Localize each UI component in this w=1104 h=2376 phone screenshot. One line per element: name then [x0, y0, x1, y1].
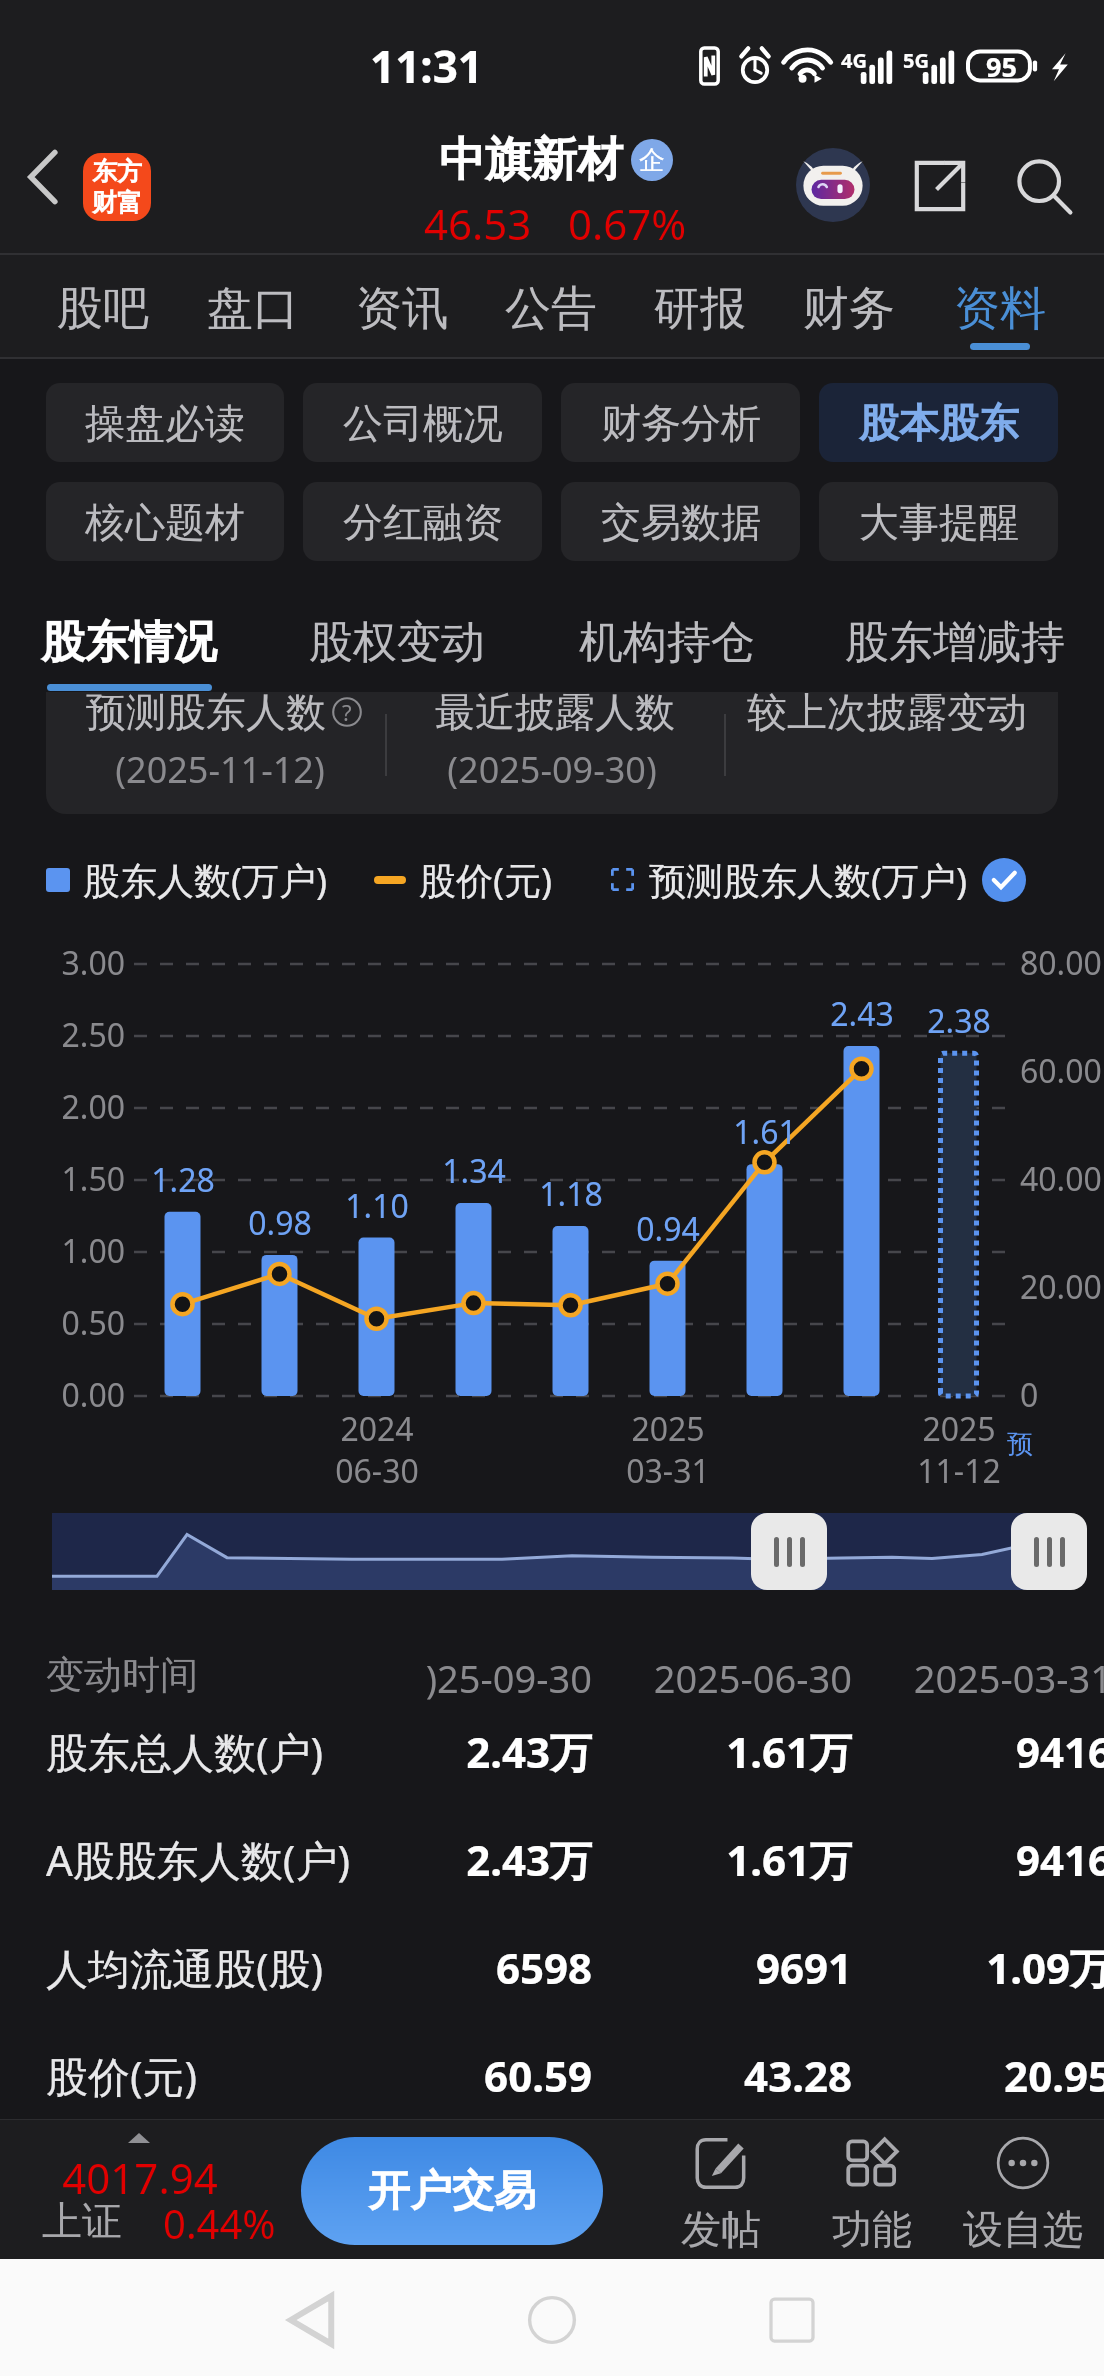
- button[interactable]: 股东情况: [19, 580, 239, 694]
- staticText: 0.94: [618, 1207, 718, 1251]
- staticText: 2025: [879, 1407, 1039, 1451]
- button[interactable]: 资料: [938, 255, 1062, 358]
- button[interactable]: 股权变动: [287, 580, 507, 694]
- button[interactable]: Range handle: [751, 1513, 827, 1590]
- button[interactable]: 开户交易: [301, 2137, 603, 2245]
- button[interactable]: East Money home: [83, 153, 151, 221]
- button[interactable]: 财务: [787, 255, 911, 358]
- staticText: 06-30: [297, 1449, 457, 1493]
- button[interactable]: Recent apps: [747, 2275, 837, 2365]
- staticText: 60.00: [1020, 1049, 1104, 1093]
- staticText: 中旗新材: [439, 131, 623, 189]
- button[interactable]: 设自选: [953, 2124, 1093, 2259]
- staticText: 1.09万: [890, 1939, 1104, 1996]
- button[interactable]: 发帖: [651, 2124, 791, 2259]
- staticText: 交易数据: [601, 497, 761, 547]
- button[interactable]: 股吧: [41, 255, 165, 358]
- staticText: 2.43万: [370, 1723, 592, 1780]
- button[interactable]: 研报: [638, 255, 762, 358]
- staticText: 1.50: [33, 1157, 125, 1201]
- staticText: 人均流通股(股): [46, 1939, 324, 1996]
- staticText: 公司概况: [343, 398, 503, 448]
- button[interactable]: 资讯: [340, 255, 464, 358]
- button[interactable]: Toggle forecast series: [982, 858, 1026, 902]
- staticText: 核心题材: [85, 497, 245, 547]
- staticText: 股东人数(万户): [83, 854, 328, 905]
- button[interactable]: 分红融资: [303, 482, 542, 561]
- staticText: 设自选: [953, 2204, 1093, 2254]
- staticText: 股吧: [57, 280, 149, 338]
- staticText: 变动时间: [46, 1651, 198, 1699]
- staticText: 分红融资: [343, 497, 503, 547]
- staticText: 功能: [802, 2204, 942, 2254]
- staticText: (2025-11-12): [106, 745, 334, 794]
- staticText: 股东增减持: [845, 615, 1065, 670]
- button[interactable]: 功能: [802, 2124, 942, 2259]
- button[interactable]: 财务分析: [561, 383, 800, 462]
- staticText: 预测股东人数(万户): [649, 854, 968, 905]
- button[interactable]: AI assistant: [796, 148, 870, 222]
- staticText: 4G: [841, 47, 867, 74]
- button[interactable]: Share: [902, 148, 978, 224]
- staticText: 开户交易: [368, 2165, 536, 2218]
- staticText: 2.38: [909, 999, 1009, 1043]
- staticText: 40.00: [1020, 1157, 1104, 1201]
- staticText: 2025-03-31: [890, 1652, 1104, 1704]
- staticText: 6598: [370, 1939, 592, 1996]
- staticText: 股东情况: [41, 615, 217, 670]
- staticText: 1.10: [327, 1184, 427, 1228]
- staticText: 0.98: [230, 1201, 330, 1245]
- staticText: 大事提醒: [859, 497, 1019, 547]
- staticText: 1.18: [521, 1172, 621, 1216]
- staticText: 机构持仓: [579, 615, 755, 670]
- staticText: 东方: [92, 156, 142, 187]
- staticText: 0.44%: [163, 2196, 276, 2250]
- button[interactable]: 股本股东: [819, 383, 1058, 462]
- staticText: 1.61万: [630, 1831, 852, 1888]
- staticText: 11-12: [879, 1449, 1039, 1493]
- staticText: 上证: [42, 2196, 122, 2246]
- staticText: 公告: [505, 280, 597, 338]
- button[interactable]: 公司概况: [303, 383, 542, 462]
- button[interactable]: 机构持仓: [557, 580, 777, 694]
- staticText: 11:31: [370, 36, 484, 96]
- button[interactable]: 4017.94: [20, 2120, 280, 2259]
- button[interactable]: Back: [6, 140, 80, 214]
- staticText: 最近披露人数: [435, 692, 675, 737]
- button[interactable]: 公告: [489, 255, 613, 358]
- staticText: A股股东人数(户): [46, 1831, 351, 1888]
- button[interactable]: Range handle: [1011, 1513, 1087, 1590]
- button[interactable]: Search: [1006, 148, 1082, 224]
- staticText: 盘口: [207, 280, 299, 338]
- staticText: 资料: [954, 280, 1046, 338]
- staticText: 1.34: [424, 1149, 524, 1193]
- button[interactable]: 交易数据: [561, 482, 800, 561]
- staticText: 60.59: [370, 2047, 592, 2104]
- staticText: 较上次披露变动: [747, 692, 1027, 737]
- staticText: ?: [342, 697, 352, 727]
- staticText: 2.43万: [370, 1831, 592, 1888]
- button[interactable]: Home: [507, 2275, 597, 2365]
- staticText: 46.53: [424, 195, 532, 252]
- staticText: 20.00: [1020, 1265, 1104, 1309]
- staticText: 95: [986, 48, 1017, 85]
- staticText: 财富: [92, 187, 142, 218]
- staticText: 0.67%: [568, 195, 687, 252]
- staticText: 4017.94: [20, 2149, 260, 2206]
- button[interactable]: Back: [266, 2275, 356, 2365]
- staticText: 企: [639, 144, 665, 177]
- button[interactable]: 操盘必读: [46, 383, 284, 462]
- staticText: 9691: [630, 1939, 852, 1996]
- button[interactable]: 股东增减持: [845, 580, 1065, 694]
- staticText: 2.43: [812, 992, 912, 1036]
- button[interactable]: 核心题材: [46, 482, 284, 561]
- staticText: 财务: [803, 280, 895, 338]
- staticText: 发帖: [651, 2204, 791, 2254]
- staticText: 财务分析: [601, 398, 761, 448]
- staticText: 2025-06-30: [630, 1652, 852, 1704]
- staticText: 2.00: [33, 1085, 125, 1129]
- button[interactable]: 大事提醒: [819, 482, 1058, 561]
- staticText: 2025: [588, 1407, 748, 1451]
- staticText: 1.61: [715, 1110, 815, 1154]
- button[interactable]: 盘口: [191, 255, 315, 358]
